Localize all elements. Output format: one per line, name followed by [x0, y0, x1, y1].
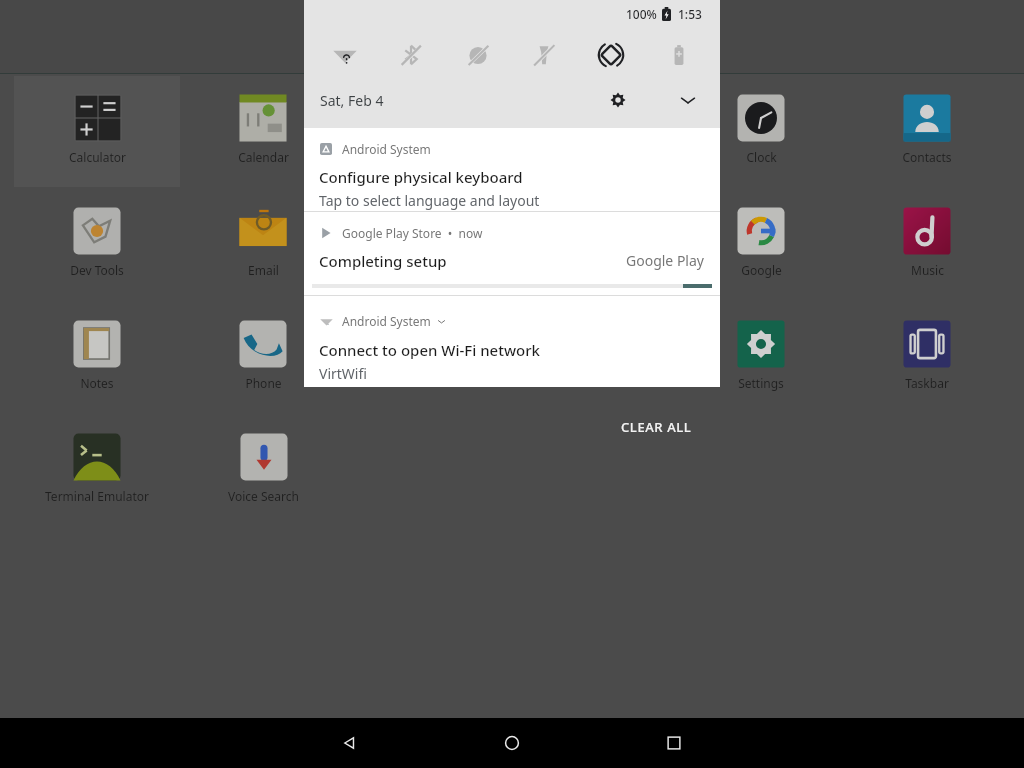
button[interactable]: Expand: [672, 84, 704, 116]
staticText: 1:53: [678, 6, 702, 22]
staticText: VirtWifi: [319, 364, 367, 383]
staticText: Google: [741, 262, 782, 278]
staticText: Terminal Emulator: [45, 488, 149, 504]
button[interactable]: Calendar: [203, 90, 323, 180]
button[interactable]: Wi-Fi: [323, 33, 367, 77]
button[interactable]: Do not disturb: [456, 33, 500, 77]
staticText: CLEAR ALL: [621, 418, 692, 436]
staticText: Connect to open Wi-Fi network: [319, 340, 540, 360]
button[interactable]: Notes: [37, 316, 157, 406]
button[interactable]: Voice Search: [203, 429, 323, 519]
staticText: Taskbar: [905, 375, 949, 391]
button[interactable]: Email: [203, 203, 323, 293]
staticText: Google Play Store • now: [342, 225, 483, 241]
button[interactable]: Android System: [304, 296, 720, 387]
button[interactable]: Home: [487, 718, 537, 768]
button[interactable]: Recents: [649, 718, 699, 768]
button[interactable]: Settings: [701, 316, 821, 406]
staticText: 100%: [626, 6, 657, 22]
staticText: Contacts: [902, 149, 952, 165]
staticText: Email: [248, 262, 279, 278]
button[interactable]: Music: [867, 203, 987, 293]
staticText: Google Play: [626, 251, 704, 270]
staticText: Tap to select language and layout: [319, 191, 540, 210]
staticText: Android System: [342, 141, 431, 157]
button[interactable]: Android System: [304, 128, 720, 211]
staticText: Dev Tools: [70, 262, 124, 278]
button[interactable]: Flashlight: [522, 33, 566, 77]
staticText: Calendar: [238, 149, 289, 165]
staticText: Voice Search: [228, 488, 299, 504]
staticText: Phone: [245, 375, 282, 391]
staticText: Completing setup: [319, 251, 447, 271]
staticText: Calculator: [69, 149, 126, 165]
button[interactable]: Battery Saver: [657, 33, 701, 77]
button[interactable]: Terminal Emulator: [37, 429, 157, 519]
staticText: Sat, Feb 4: [320, 91, 384, 110]
button[interactable]: Phone: [203, 316, 323, 406]
button[interactable]: Contacts: [867, 90, 987, 180]
button[interactable]: Settings: [602, 84, 634, 116]
staticText: Android System: [342, 313, 431, 329]
button[interactable]: Clock: [701, 90, 821, 180]
button[interactable]: Bluetooth: [389, 33, 433, 77]
button[interactable]: Google Play Store • now: [304, 212, 720, 295]
button[interactable]: Google: [701, 203, 821, 293]
staticText: Music: [911, 262, 944, 278]
staticText: Clock: [746, 149, 777, 165]
button[interactable]: Auto-rotate: [589, 33, 633, 77]
button[interactable]: Taskbar: [867, 316, 987, 406]
staticText: Configure physical keyboard: [319, 167, 523, 187]
staticText: Settings: [738, 375, 784, 391]
button[interactable]: Dev Tools: [37, 203, 157, 293]
button[interactable]: Back: [324, 718, 374, 768]
button[interactable]: CLEAR ALL: [608, 413, 704, 441]
staticText: Notes: [80, 375, 114, 391]
button[interactable]: Calculator: [37, 90, 157, 180]
